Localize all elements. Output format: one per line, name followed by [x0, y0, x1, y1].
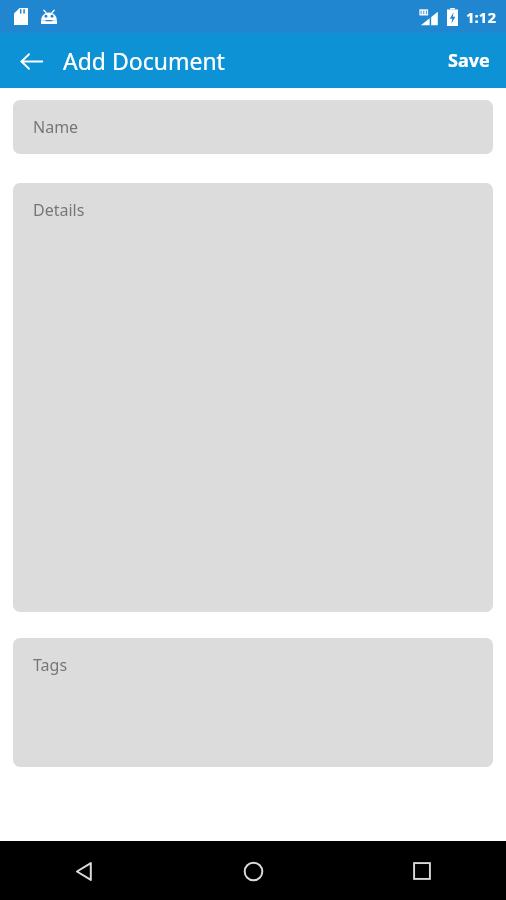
staticText: Tags — [33, 654, 68, 676]
staticText: Add Document — [63, 45, 225, 76]
button[interactable]: Back — [55, 842, 113, 900]
staticText: Details — [33, 199, 85, 221]
button[interactable]: Navigate up — [7, 37, 55, 85]
staticText: 1:12 — [466, 7, 496, 27]
button[interactable]: Save — [432, 36, 506, 85]
staticText: Save — [448, 48, 490, 73]
button[interactable]: Home — [224, 842, 282, 900]
button[interactable]: Recent apps — [393, 842, 451, 900]
staticText: Name — [33, 116, 79, 138]
button[interactable]: Tags — [13, 638, 493, 767]
button[interactable]: Name — [13, 100, 493, 154]
